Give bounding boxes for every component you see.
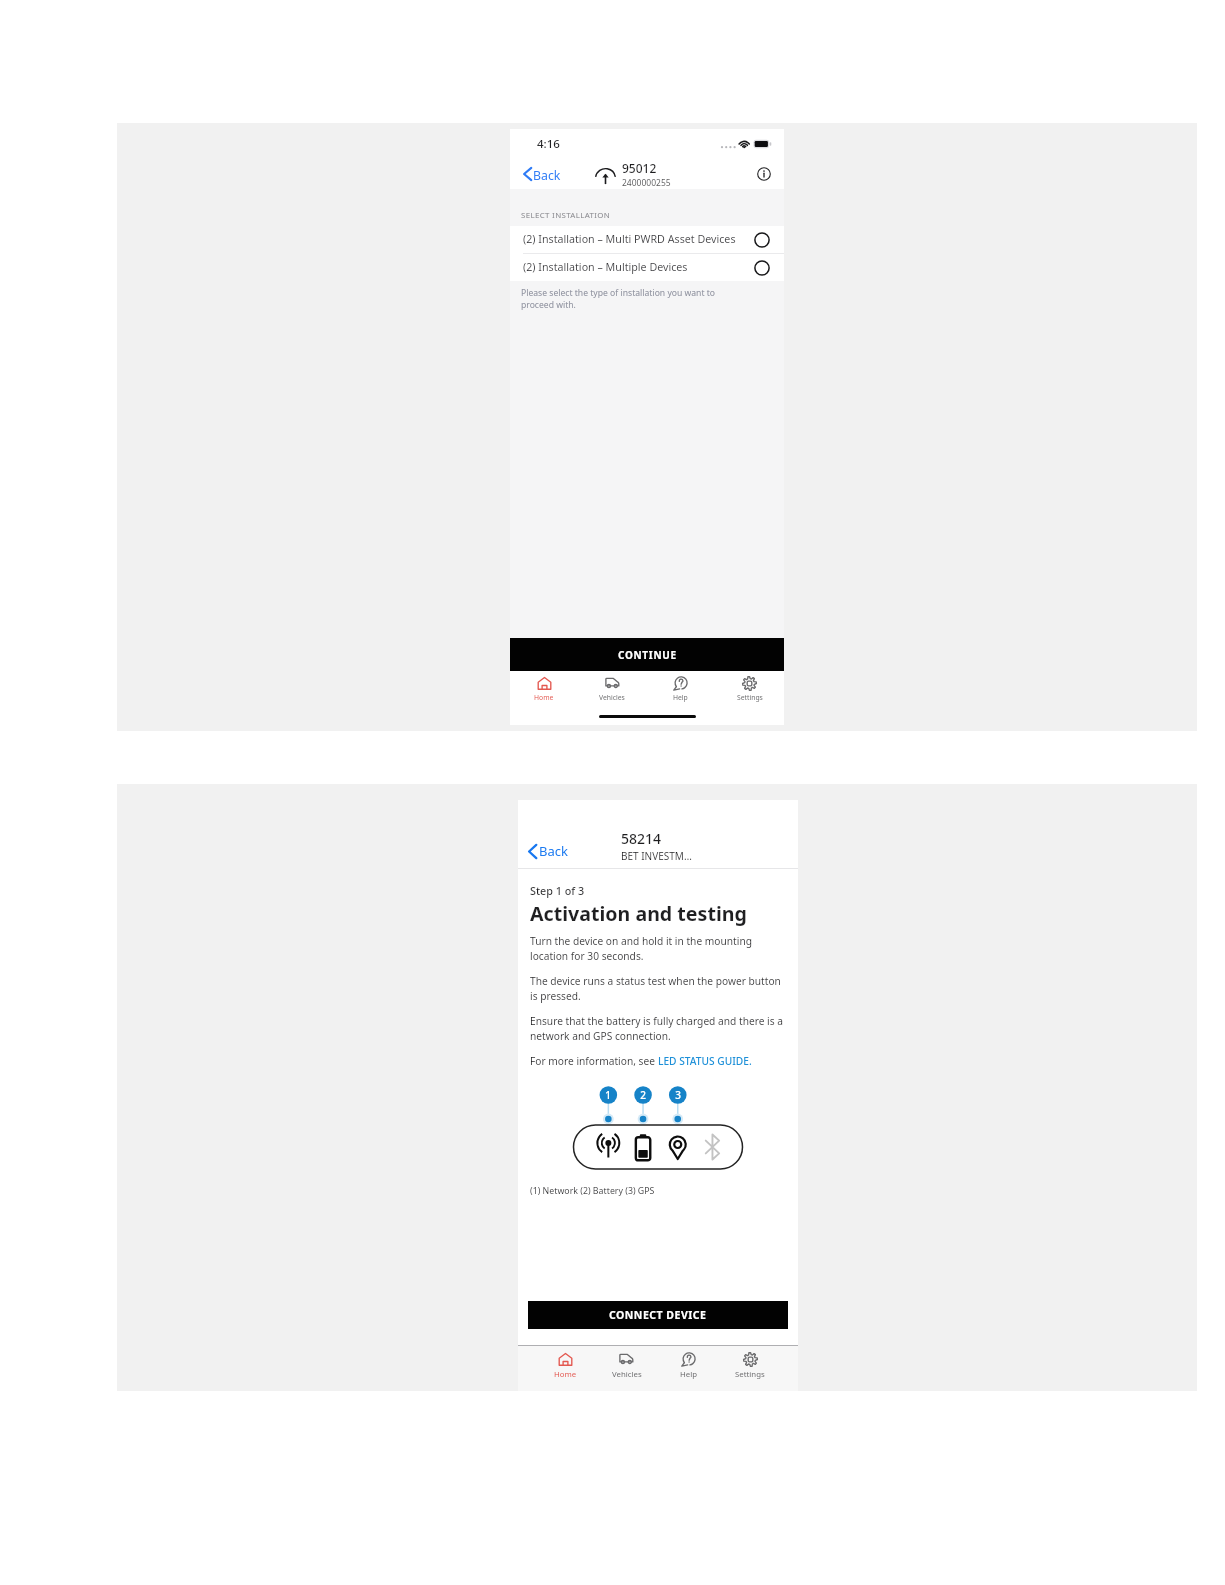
staticText: Step 1 of 3 <box>530 883 585 898</box>
staticText: 95012 <box>622 160 657 176</box>
staticText: Back <box>539 842 568 860</box>
button[interactable]: Info <box>754 164 774 184</box>
staticText: Ensure that the battery is fully charged… <box>530 1014 783 1043</box>
button[interactable]: Help <box>657 1351 719 1381</box>
staticText: Vehicles <box>612 1369 642 1380</box>
staticText: Please select the type of installation y… <box>521 287 716 310</box>
staticText: 1 <box>605 1088 611 1102</box>
button[interactable]: Back <box>518 834 578 868</box>
staticText: Settings <box>737 693 763 702</box>
staticText: (2) Installation – Multiple Devices <box>523 260 688 275</box>
staticText: BET INVESTM… <box>621 849 692 863</box>
staticText: Vehicles <box>599 693 625 702</box>
button[interactable]: Settings <box>715 675 784 703</box>
staticText: 3 <box>675 1088 681 1102</box>
staticText: Home <box>534 693 554 702</box>
staticText: (1) Network (2) Battery (3) GPS <box>530 1185 655 1197</box>
button[interactable]: Settings <box>719 1351 781 1381</box>
button[interactable]: Vehicles <box>578 675 646 703</box>
staticText: CONTINUE <box>618 648 677 662</box>
button[interactable]: Back <box>510 159 571 189</box>
button[interactable]: Home <box>510 675 578 703</box>
button[interactable]: CONNECT DEVICE <box>528 1301 788 1329</box>
staticText: Settings <box>735 1369 765 1380</box>
button[interactable]: LED STATUS GUIDE. <box>658 1054 752 1068</box>
staticText: CONNECT DEVICE <box>609 1308 707 1322</box>
staticText: Turn the device on and hold it in the mo… <box>530 934 752 963</box>
staticText: Home <box>554 1369 577 1380</box>
button[interactable]: (2) Installation – Multiple Devices <box>510 254 784 281</box>
staticText: For more information, see <box>530 1054 658 1068</box>
staticText: The device runs a status test when the p… <box>530 974 781 1003</box>
staticText: Help <box>680 1369 697 1380</box>
button[interactable]: CONTINUE <box>510 638 784 671</box>
staticText: 4:16 <box>537 136 560 152</box>
button[interactable]: Home <box>535 1351 596 1381</box>
staticText: Help <box>673 693 688 702</box>
staticText: 2400000255 <box>622 177 671 189</box>
button[interactable]: Help <box>646 675 715 703</box>
staticText: 58214 <box>621 829 662 848</box>
staticText: Back <box>533 167 561 181</box>
staticText: Activation and testing <box>530 900 747 927</box>
button[interactable]: (2) Installation – Multi PWRD Asset Devi… <box>510 226 784 253</box>
button[interactable]: Vehicles <box>596 1351 657 1381</box>
staticText: (2) Installation – Multi PWRD Asset Devi… <box>523 232 736 247</box>
staticText: 2 <box>640 1088 646 1102</box>
staticText: SELECT INSTALLATION <box>521 210 611 221</box>
